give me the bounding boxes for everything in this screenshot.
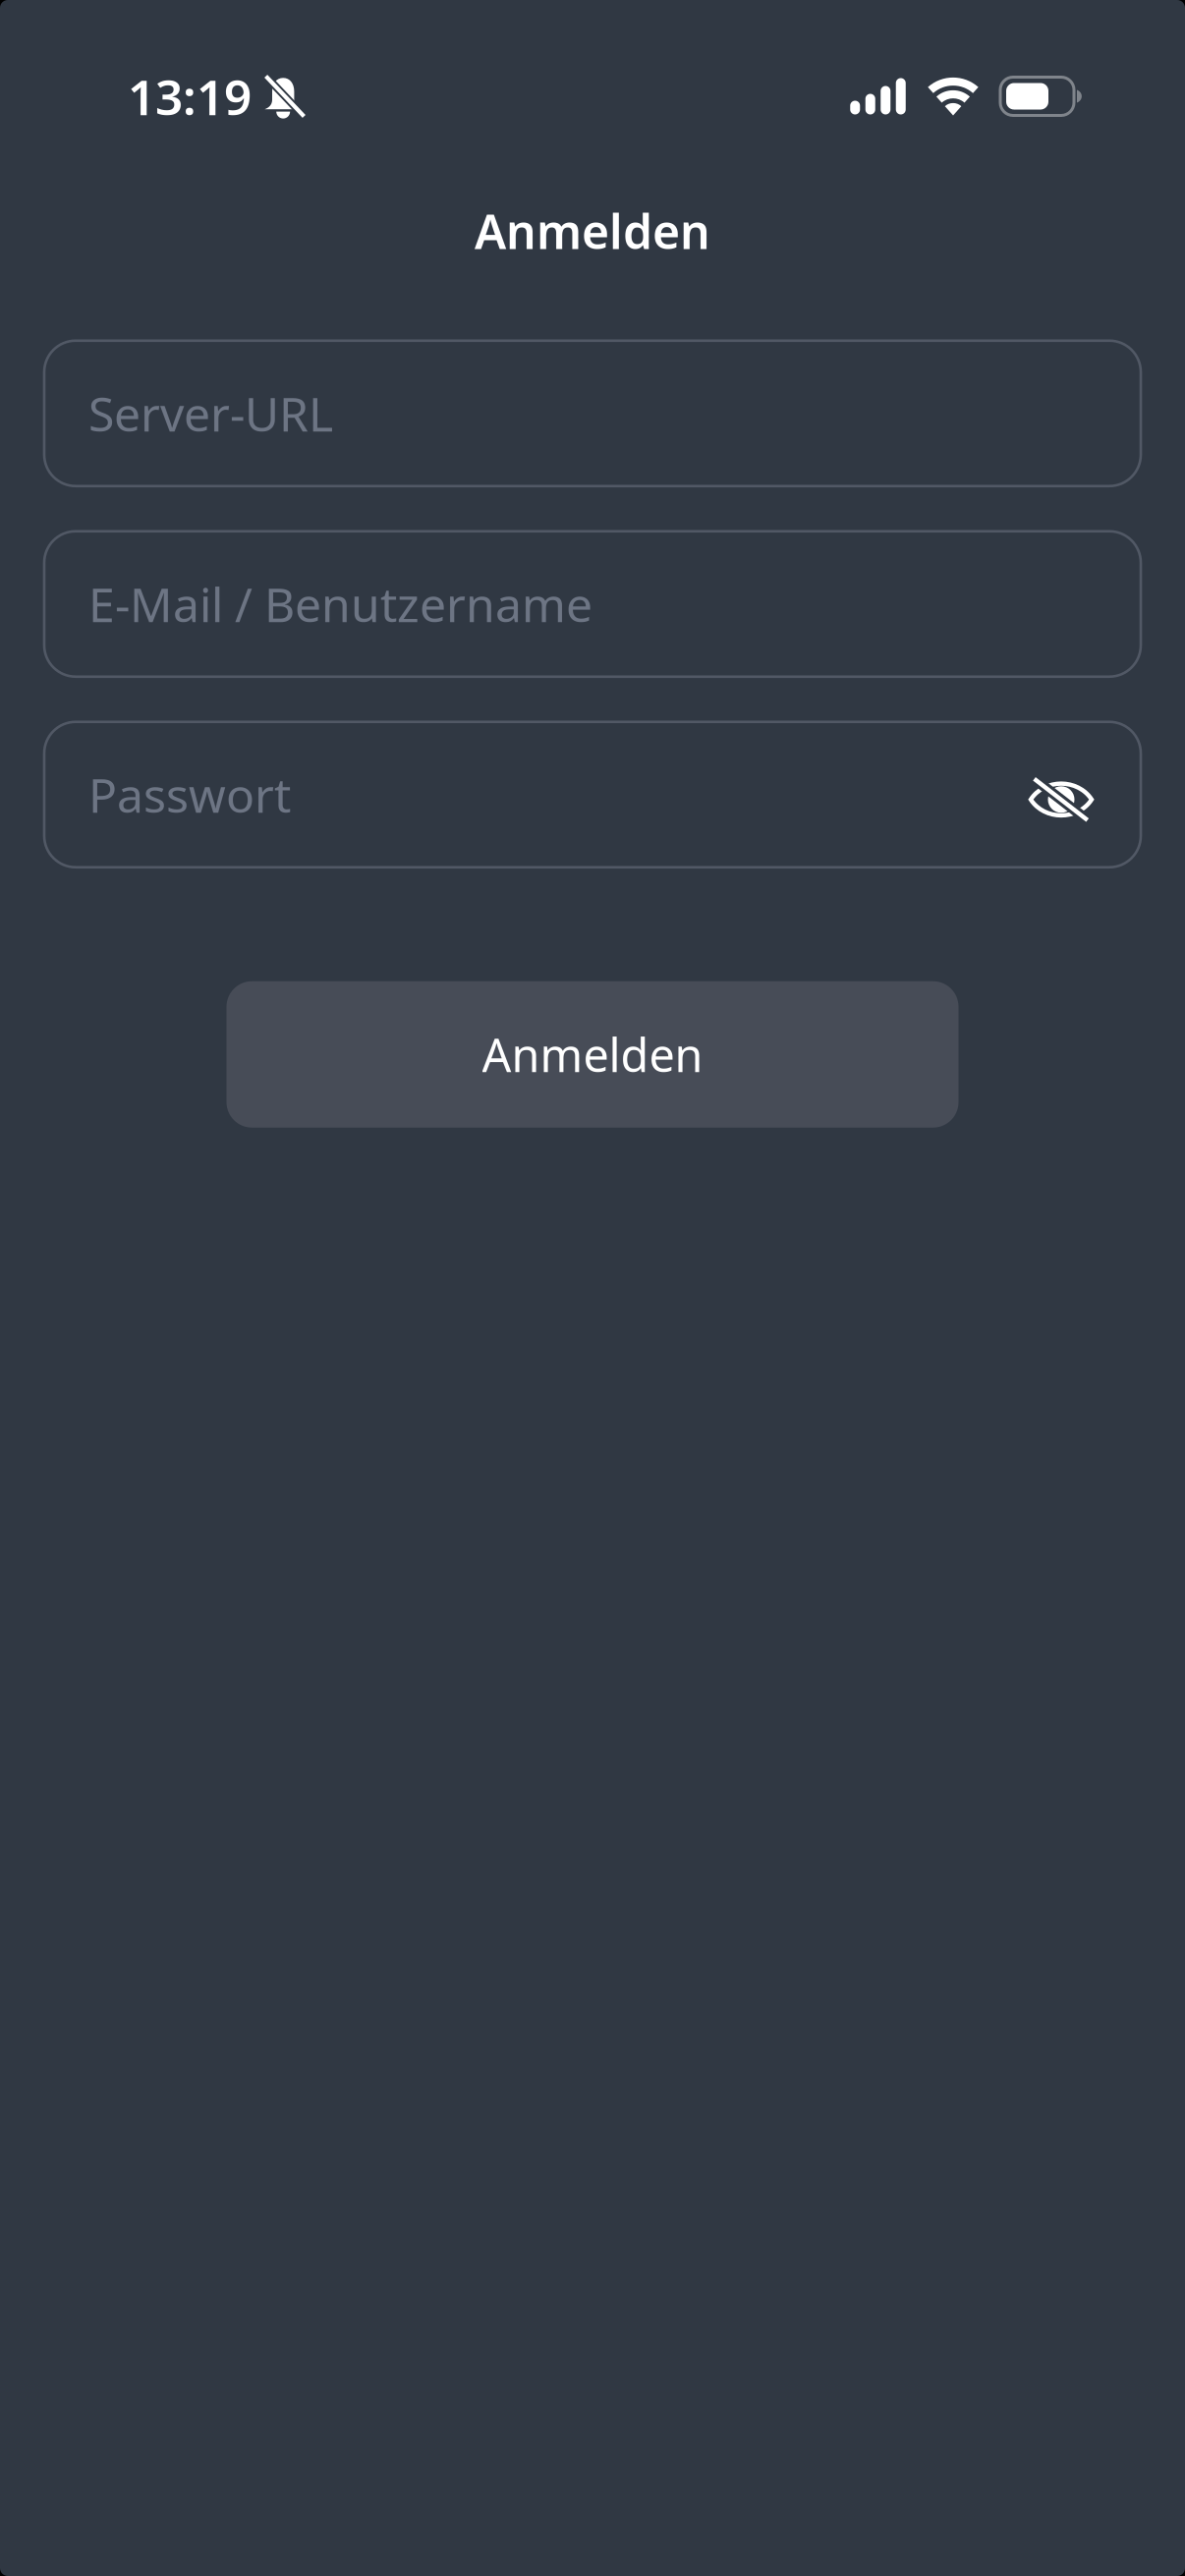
staticText: E-Mail / Benutzername — [88, 573, 592, 635]
staticText: Passwort — [88, 763, 291, 826]
staticText: 13:19 — [128, 64, 252, 128]
button[interactable]: Server-URL — [44, 341, 1141, 486]
staticText: Anmelden — [482, 1024, 703, 1085]
staticText: Server-URL — [88, 382, 333, 445]
button[interactable]: Passwort anzeigen — [1029, 767, 1094, 822]
staticText: Anmelden — [475, 199, 710, 262]
button[interactable]: Anmelden — [226, 981, 959, 1128]
button[interactable]: Passwort — [44, 722, 1141, 867]
button[interactable]: E-Mail / Benutzername — [44, 531, 1141, 677]
